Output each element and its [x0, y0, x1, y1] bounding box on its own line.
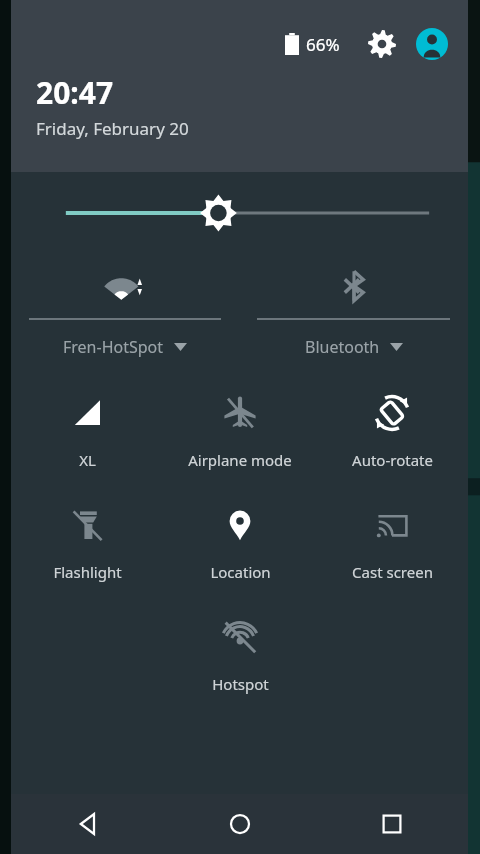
button[interactable]: Cast screen — [316, 498, 468, 586]
staticText: Cast screen — [352, 562, 433, 582]
button[interactable]: Recent apps — [316, 794, 468, 854]
button[interactable]: Airplane mode — [164, 386, 316, 474]
staticText: Airplane mode — [188, 450, 292, 470]
button[interactable]: Bluetooth — [239, 262, 468, 358]
button[interactable]: XL — [11, 386, 164, 474]
button[interactable]: Flashlight — [11, 498, 164, 586]
staticText: XL — [79, 450, 96, 470]
staticText: Hotspot — [212, 674, 269, 694]
button[interactable]: Fren-HotSpot — [11, 262, 239, 358]
button[interactable]: Back — [11, 794, 164, 854]
button[interactable]: Hotspot — [164, 610, 316, 698]
staticText: Fren-HotSpot — [63, 336, 164, 358]
button[interactable]: Auto-rotate — [316, 386, 468, 474]
button[interactable]: Location — [164, 498, 316, 586]
staticText: Flashlight — [53, 562, 122, 582]
staticText: Friday, February 20 — [36, 117, 189, 140]
button[interactable]: Settings — [364, 26, 400, 62]
button[interactable]: User profile — [414, 26, 450, 62]
button[interactable]: Brightness — [11, 190, 468, 236]
staticText: 20:47 — [36, 72, 114, 113]
staticText: Bluetooth — [305, 336, 380, 358]
staticText: Location — [210, 562, 271, 582]
button[interactable]: Home — [164, 794, 316, 854]
staticText: Auto-rotate — [352, 450, 433, 470]
staticText: 66% — [306, 33, 340, 56]
